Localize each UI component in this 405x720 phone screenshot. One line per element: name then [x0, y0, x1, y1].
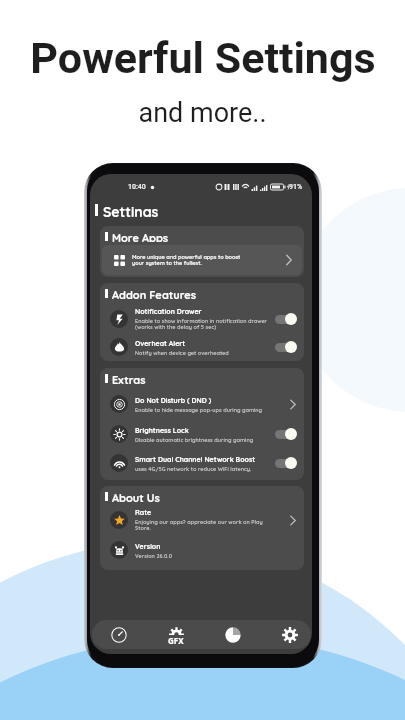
staticText: and more.. — [138, 97, 267, 129]
button[interactable]: Brightness Lock — [100, 419, 304, 449]
button[interactable]: Rate — [100, 505, 304, 535]
button[interactable]: Overheat Alert — [100, 332, 304, 361]
staticText: uses 4G/5G network to reduce WiFi latenc… — [135, 465, 252, 472]
staticText: Extras — [112, 373, 146, 384]
staticText: Enable to hide message pop-ups during ga… — [135, 406, 263, 413]
button[interactable]: Smart Dual Channel Network Boost — [100, 448, 304, 478]
button[interactable]: More unique and powerful apps to boost y… — [102, 245, 302, 275]
staticText: Enjoying our apps? appreciate our work o… — [135, 518, 263, 532]
staticText: More Apps — [112, 231, 169, 242]
staticText: Brightness Lock — [135, 426, 189, 435]
staticText: Enable to show information in notificati… — [135, 317, 268, 331]
staticText: Powerful Settings — [30, 33, 376, 83]
button[interactable]: Do Not Disturb ( DND ) — [100, 389, 304, 419]
staticText: Smart Dual Channel Network Boost — [135, 455, 256, 464]
staticText: Version 26.0.0 — [135, 552, 173, 559]
staticText: Overheat Alert — [135, 339, 186, 348]
staticText: Disable automatic brightness during gami… — [135, 436, 254, 443]
staticText: Settings — [103, 203, 159, 217]
staticText: Notify when device get overheated — [135, 349, 229, 356]
button[interactable]: Performance — [105, 620, 133, 649]
button[interactable]: Settings — [276, 620, 304, 649]
staticText: Version — [135, 542, 161, 551]
staticText: GFX — [168, 635, 184, 646]
staticText: More unique and powerful apps to boost y… — [132, 253, 246, 267]
staticText: Addon Features — [112, 288, 197, 299]
staticText: Do Not Disturb ( DND ) — [135, 396, 212, 405]
button[interactable]: Notification Drawer — [100, 304, 304, 334]
staticText: Notification Drawer — [135, 307, 202, 316]
button[interactable]: Version — [100, 535, 304, 565]
staticText: Rate — [135, 508, 152, 517]
button[interactable]: Statistics — [219, 620, 247, 649]
staticText: 91% — [289, 183, 303, 191]
staticText: About Us — [112, 491, 160, 502]
staticText: 10:40 — [128, 183, 146, 191]
button[interactable]: GFX Tools — [162, 620, 190, 649]
